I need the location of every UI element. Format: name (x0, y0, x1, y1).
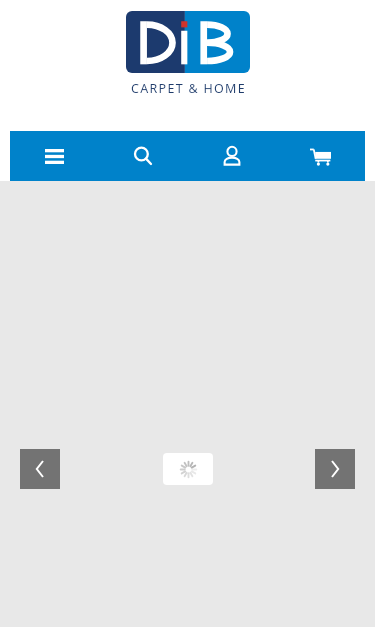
button[interactable]: Account (187, 131, 276, 181)
button[interactable]: Menu (10, 131, 98, 181)
staticText: CARPET & HOME (131, 80, 246, 97)
button[interactable]: Cart (276, 131, 365, 181)
button[interactable]: DIB Carpet & Home home (126, 11, 250, 97)
button[interactable]: Search (98, 131, 187, 181)
button[interactable]: Next slide (315, 449, 355, 489)
button[interactable]: Previous slide (20, 449, 60, 489)
